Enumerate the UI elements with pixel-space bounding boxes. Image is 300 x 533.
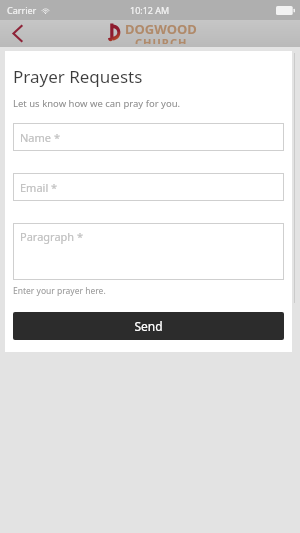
staticText: Name * [20, 130, 60, 145]
button[interactable]: Back [0, 20, 34, 47]
button[interactable]: Paragraph * [13, 223, 284, 280]
staticText: Send [134, 318, 163, 334]
staticText: DOGWOOD [125, 20, 197, 38]
staticText: Prayer Requests [13, 65, 143, 88]
staticText: Carrier [7, 4, 37, 16]
button[interactable]: Name * [13, 123, 284, 151]
staticText: Email * [20, 180, 58, 195]
staticText: CHURCH [135, 35, 188, 44]
button[interactable]: Send [13, 312, 284, 340]
button[interactable]: Email * [13, 173, 284, 201]
staticText: 10:12 AM [130, 4, 170, 16]
staticText: Let us know how we can pray for you. [13, 97, 181, 110]
staticText: Enter your prayer here. [13, 285, 106, 297]
staticText: Paragraph * [20, 229, 84, 244]
